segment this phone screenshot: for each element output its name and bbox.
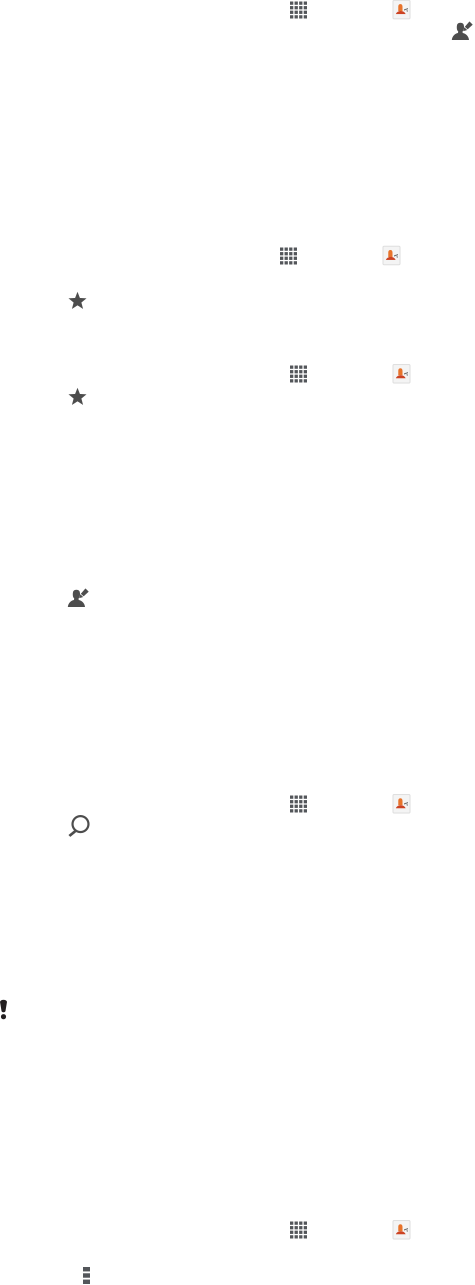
staticText: To view your contacts (20, 270, 220, 296)
button[interactable]: Favourite (68, 291, 87, 310)
button[interactable]: Application screen (280, 247, 297, 264)
button[interactable]: Search (68, 816, 89, 837)
staticText: 3 If you have synchronised your contacts… (20, 597, 453, 783)
button[interactable]: Contacts (393, 365, 410, 383)
button[interactable]: Application screen (290, 365, 307, 382)
staticText: 2 Tap and enter a phone number, name or … (20, 1243, 444, 1285)
staticText: 4 Enter or select the desired informatio… (20, 791, 435, 844)
button[interactable]: Contacts (393, 794, 410, 813)
button[interactable]: Application screen (290, 1221, 307, 1238)
staticText: 2 Tap to open the contact you want to ed… (20, 347, 443, 374)
button[interactable]: Contacts (383, 246, 400, 265)
button[interactable]: Edit contact (452, 20, 472, 40)
button[interactable]: Contacts (393, 0, 410, 19)
staticText: 1 From your Home screen, tap , then tap … (20, 1208, 453, 1235)
button[interactable]: Favourite (68, 387, 87, 406)
button[interactable]: Contacts (393, 1220, 410, 1239)
button[interactable]: Application screen (290, 795, 307, 812)
button[interactable]: More options (83, 1267, 90, 1284)
button[interactable]: Add contact (68, 587, 88, 607)
button[interactable]: Application screen (290, 1, 307, 18)
